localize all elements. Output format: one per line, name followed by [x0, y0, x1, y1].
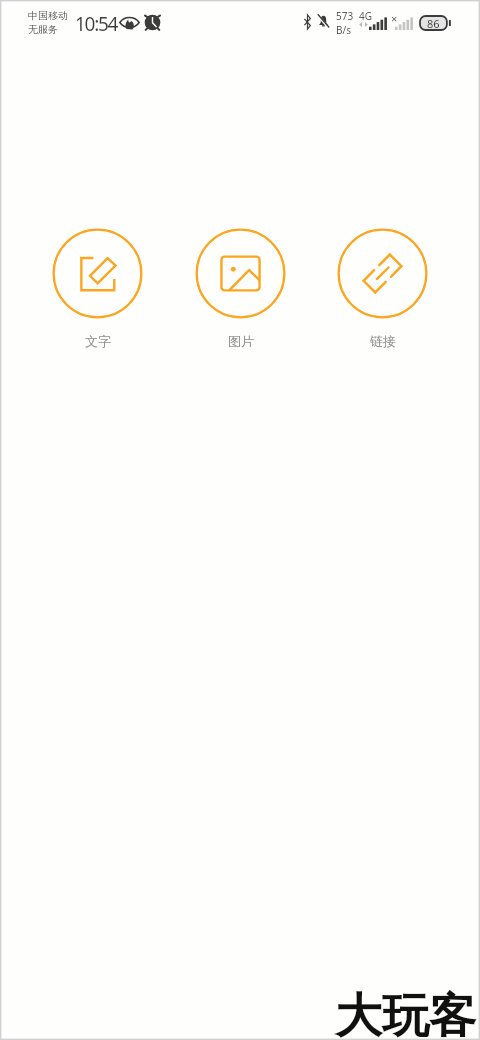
button[interactable]: 图片	[195, 228, 286, 349]
staticText: 文字	[85, 333, 111, 349]
staticText: 大玩客	[335, 987, 476, 1040]
other: 文字	[52, 228, 143, 319]
other: 图片	[195, 228, 286, 319]
button[interactable]: 文字	[52, 228, 143, 349]
staticText: 86	[427, 16, 440, 31]
other: 链接	[337, 228, 428, 319]
staticText: 4G	[359, 9, 372, 23]
staticText: 链接	[370, 333, 396, 349]
staticText: 10:54	[75, 11, 118, 37]
staticText: 无服务	[28, 23, 58, 36]
staticText: 573	[336, 9, 354, 23]
staticText: B/s	[336, 23, 352, 37]
staticText: ×	[391, 11, 398, 26]
button[interactable]: 链接	[337, 228, 428, 349]
staticText: 中国移动	[28, 9, 68, 22]
staticText: 图片	[228, 333, 254, 349]
